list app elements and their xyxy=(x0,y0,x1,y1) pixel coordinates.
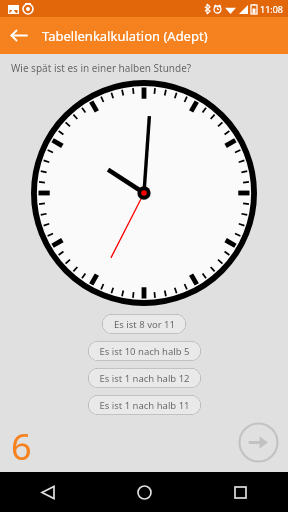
button[interactable]: Next xyxy=(238,422,279,463)
button[interactable]: Recents xyxy=(192,472,288,512)
staticText: Es ist 1 nach halb 11 xyxy=(99,399,190,412)
button[interactable]: Back xyxy=(0,17,37,54)
button[interactable]: Es ist 1 nach halb 12 xyxy=(88,368,201,388)
button[interactable]: Home xyxy=(96,472,192,512)
button[interactable]: Back xyxy=(0,472,96,512)
staticText: Wie spät ist es in einer halben Stunde? xyxy=(11,61,192,75)
staticText: Es ist 8 vor 11 xyxy=(114,318,175,331)
staticText: Tabellenkalkulation (Adept) xyxy=(42,27,208,45)
button[interactable]: Es ist 8 vor 11 xyxy=(102,314,186,334)
staticText: Es ist 1 nach halb 12 xyxy=(99,372,190,385)
staticText: 11:08 xyxy=(260,3,284,15)
staticText: Es ist 10 nach halb 5 xyxy=(99,345,190,358)
button[interactable]: Es ist 10 nach halb 5 xyxy=(88,341,201,361)
button[interactable]: Es ist 1 nach halb 11 xyxy=(88,395,201,415)
staticText: 6 xyxy=(11,422,32,471)
